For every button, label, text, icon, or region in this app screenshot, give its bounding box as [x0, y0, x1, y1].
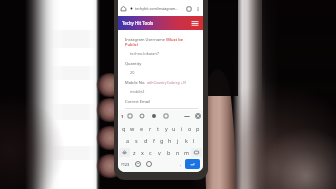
staticText: v [158, 149, 161, 156]
button[interactable]: Enter [185, 159, 200, 169]
staticText: techyhit.com/instagram... [135, 6, 179, 11]
button[interactable]: Tabs [186, 6, 192, 12]
staticText: x [141, 149, 144, 156]
button[interactable]: f [150, 134, 158, 146]
button[interactable]: h [166, 134, 174, 146]
button[interactable]: g [158, 134, 166, 146]
staticText: c [149, 149, 152, 156]
button[interactable]: Shift [119, 148, 130, 157]
staticText: g [160, 137, 164, 144]
staticText: f [153, 137, 155, 144]
button[interactable]: q [119, 122, 128, 134]
button[interactable]: t [154, 122, 162, 134]
staticText: Mobile No. [125, 80, 147, 85]
button[interactable]: Home [120, 5, 127, 12]
staticText: p [196, 125, 200, 132]
button[interactable]: d [141, 134, 150, 146]
button[interactable]: Menu [191, 19, 199, 27]
button[interactable]: Tool 1 [127, 113, 133, 119]
staticText: w [130, 125, 135, 132]
button[interactable]: z [130, 146, 138, 158]
staticText: j [177, 137, 179, 144]
button[interactable]: v [155, 146, 164, 158]
button[interactable]: m [182, 146, 191, 158]
button[interactable]: b [164, 146, 173, 158]
staticText: k [185, 137, 188, 144]
staticText: (Must be [166, 37, 184, 42]
button[interactable]: Backspace [191, 148, 202, 157]
button[interactable]: k [182, 134, 190, 146]
staticText: o [188, 125, 192, 132]
button[interactable]: p [194, 122, 202, 134]
staticText: h [168, 137, 172, 144]
button[interactable]: Tool 4 [163, 113, 169, 119]
staticText: with Country Code eg: +91 [147, 81, 187, 85]
button[interactable]: a [123, 134, 132, 146]
staticText: e [140, 125, 144, 132]
staticText: ?123 [121, 162, 130, 167]
staticText: techno.bikaran7 [130, 51, 159, 56]
button[interactable]: Tool 3 [151, 113, 157, 119]
button[interactable]: x [138, 146, 146, 158]
staticText: Techy Hit Tools [122, 20, 154, 26]
staticText: Public) [125, 42, 139, 47]
staticText: mobile2 [130, 89, 145, 94]
staticText: n [176, 149, 180, 156]
staticText: Correct Email [125, 99, 151, 104]
staticText: q [122, 125, 126, 132]
staticText: t [157, 125, 159, 132]
button[interactable]: e [137, 122, 146, 134]
staticText: 20 [130, 70, 135, 75]
staticText: a [126, 137, 130, 144]
button[interactable]: Settings [195, 113, 201, 119]
button[interactable]: ?123 [121, 162, 130, 167]
button[interactable]: l [190, 134, 198, 146]
staticText: y [165, 125, 168, 132]
staticText: r [149, 125, 152, 132]
staticText: . [180, 161, 182, 167]
button[interactable]: w [128, 122, 137, 134]
button[interactable]: o [186, 122, 194, 134]
button[interactable]: j [174, 134, 182, 146]
staticText: i [181, 125, 183, 132]
staticText: Instagram Username [125, 37, 166, 42]
staticText: b [167, 149, 171, 156]
button[interactable]: Language [146, 161, 152, 167]
button[interactable]: n [173, 146, 182, 158]
button[interactable]: y [162, 122, 170, 134]
button[interactable]: u [170, 122, 178, 134]
button[interactable]: i [178, 122, 186, 134]
button[interactable]: Emoji [135, 161, 141, 167]
staticText: d [144, 137, 148, 144]
staticText: l [193, 137, 195, 144]
staticText: m [184, 149, 190, 156]
button[interactable]: s [132, 134, 141, 146]
staticText: s [135, 137, 138, 144]
button[interactable]: r [146, 122, 154, 134]
button[interactable]: Tool 2 [139, 113, 145, 119]
staticText: z [133, 149, 136, 156]
staticText: u [172, 125, 176, 132]
staticText: Quantity [125, 61, 142, 66]
button[interactable]: c [146, 146, 155, 158]
button[interactable]: More options [195, 6, 201, 12]
